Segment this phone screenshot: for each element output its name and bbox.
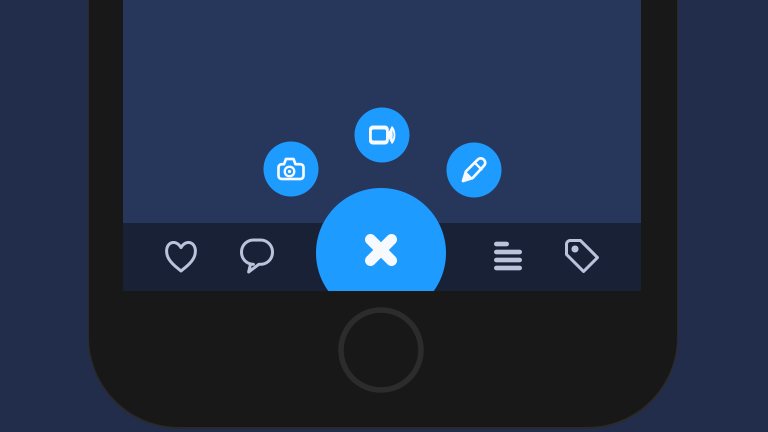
- button[interactable]: Activity feed: [480, 222, 536, 290]
- button[interactable]: Take a photo: [263, 141, 318, 196]
- button[interactable]: Likes: [153, 222, 209, 290]
- button[interactable]: Close menu: [316, 188, 446, 318]
- button[interactable]: Write a post: [446, 142, 501, 197]
- button[interactable]: Record a video: [354, 107, 409, 162]
- button[interactable]: Tags: [554, 222, 610, 290]
- button[interactable]: Messages: [229, 222, 285, 290]
